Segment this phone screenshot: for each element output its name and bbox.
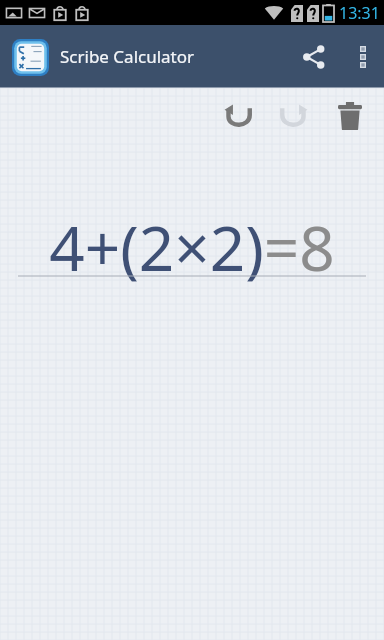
staticText: Scribe Calculator — [60, 45, 195, 68]
button[interactable]: Undo — [210, 88, 266, 144]
button[interactable]: Redo — [266, 88, 322, 144]
button[interactable]: 4+(2×2)=8 — [0, 205, 384, 289]
staticText: 13:31 — [339, 2, 380, 24]
button[interactable]: Share — [286, 25, 342, 88]
staticText: 4+(2×2)=8 — [49, 205, 335, 289]
button[interactable]: App icon — [10, 37, 50, 77]
other: App icon — [12, 39, 49, 76]
button[interactable]: Clear — [322, 88, 378, 144]
button[interactable]: More options — [342, 25, 384, 88]
